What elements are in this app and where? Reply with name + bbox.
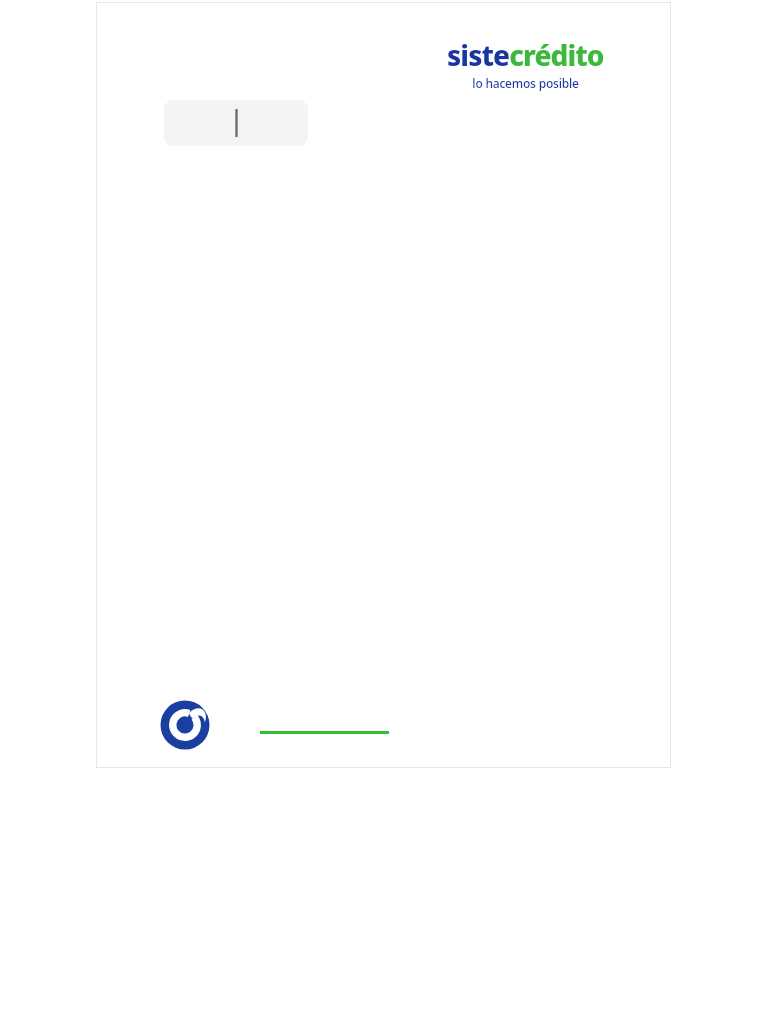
button[interactable]: Logo (160, 700, 210, 750)
staticText: lo hacemos posible (472, 75, 579, 91)
staticText: sistecrédito (447, 36, 604, 74)
button[interactable]: Campo de texto (164, 100, 308, 146)
button[interactable]: Sistecredito (445, 34, 606, 93)
